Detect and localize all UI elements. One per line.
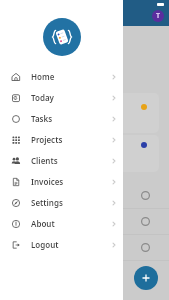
staticText: Settings xyxy=(31,197,63,208)
button[interactable]: Home xyxy=(0,66,123,87)
staticText: Clients xyxy=(31,155,58,166)
button[interactable]: Projects xyxy=(0,129,123,150)
button[interactable] xyxy=(20,135,159,172)
staticText: Home xyxy=(31,71,55,82)
staticText: Logout xyxy=(31,239,59,250)
button[interactable] xyxy=(0,209,169,234)
button[interactable]: Profile xyxy=(152,10,164,22)
button[interactable]: Add xyxy=(134,266,158,290)
button[interactable]: Invoices xyxy=(0,171,123,192)
button[interactable]: About xyxy=(0,213,123,234)
staticText: About xyxy=(31,218,55,229)
button[interactable] xyxy=(20,93,159,133)
staticText: Today xyxy=(31,92,54,103)
staticText: Projects xyxy=(31,134,63,145)
button[interactable]: Logout xyxy=(0,234,123,255)
button[interactable] xyxy=(0,235,169,260)
staticText: Invoices xyxy=(31,176,64,187)
button[interactable]: Settings xyxy=(0,192,123,213)
button[interactable] xyxy=(0,183,169,208)
button[interactable]: Clients xyxy=(0,150,123,171)
staticText: T xyxy=(156,11,161,21)
staticText: Tasks xyxy=(31,113,53,124)
button[interactable]: Today xyxy=(0,87,123,108)
button[interactable]: Tasks xyxy=(0,108,123,129)
